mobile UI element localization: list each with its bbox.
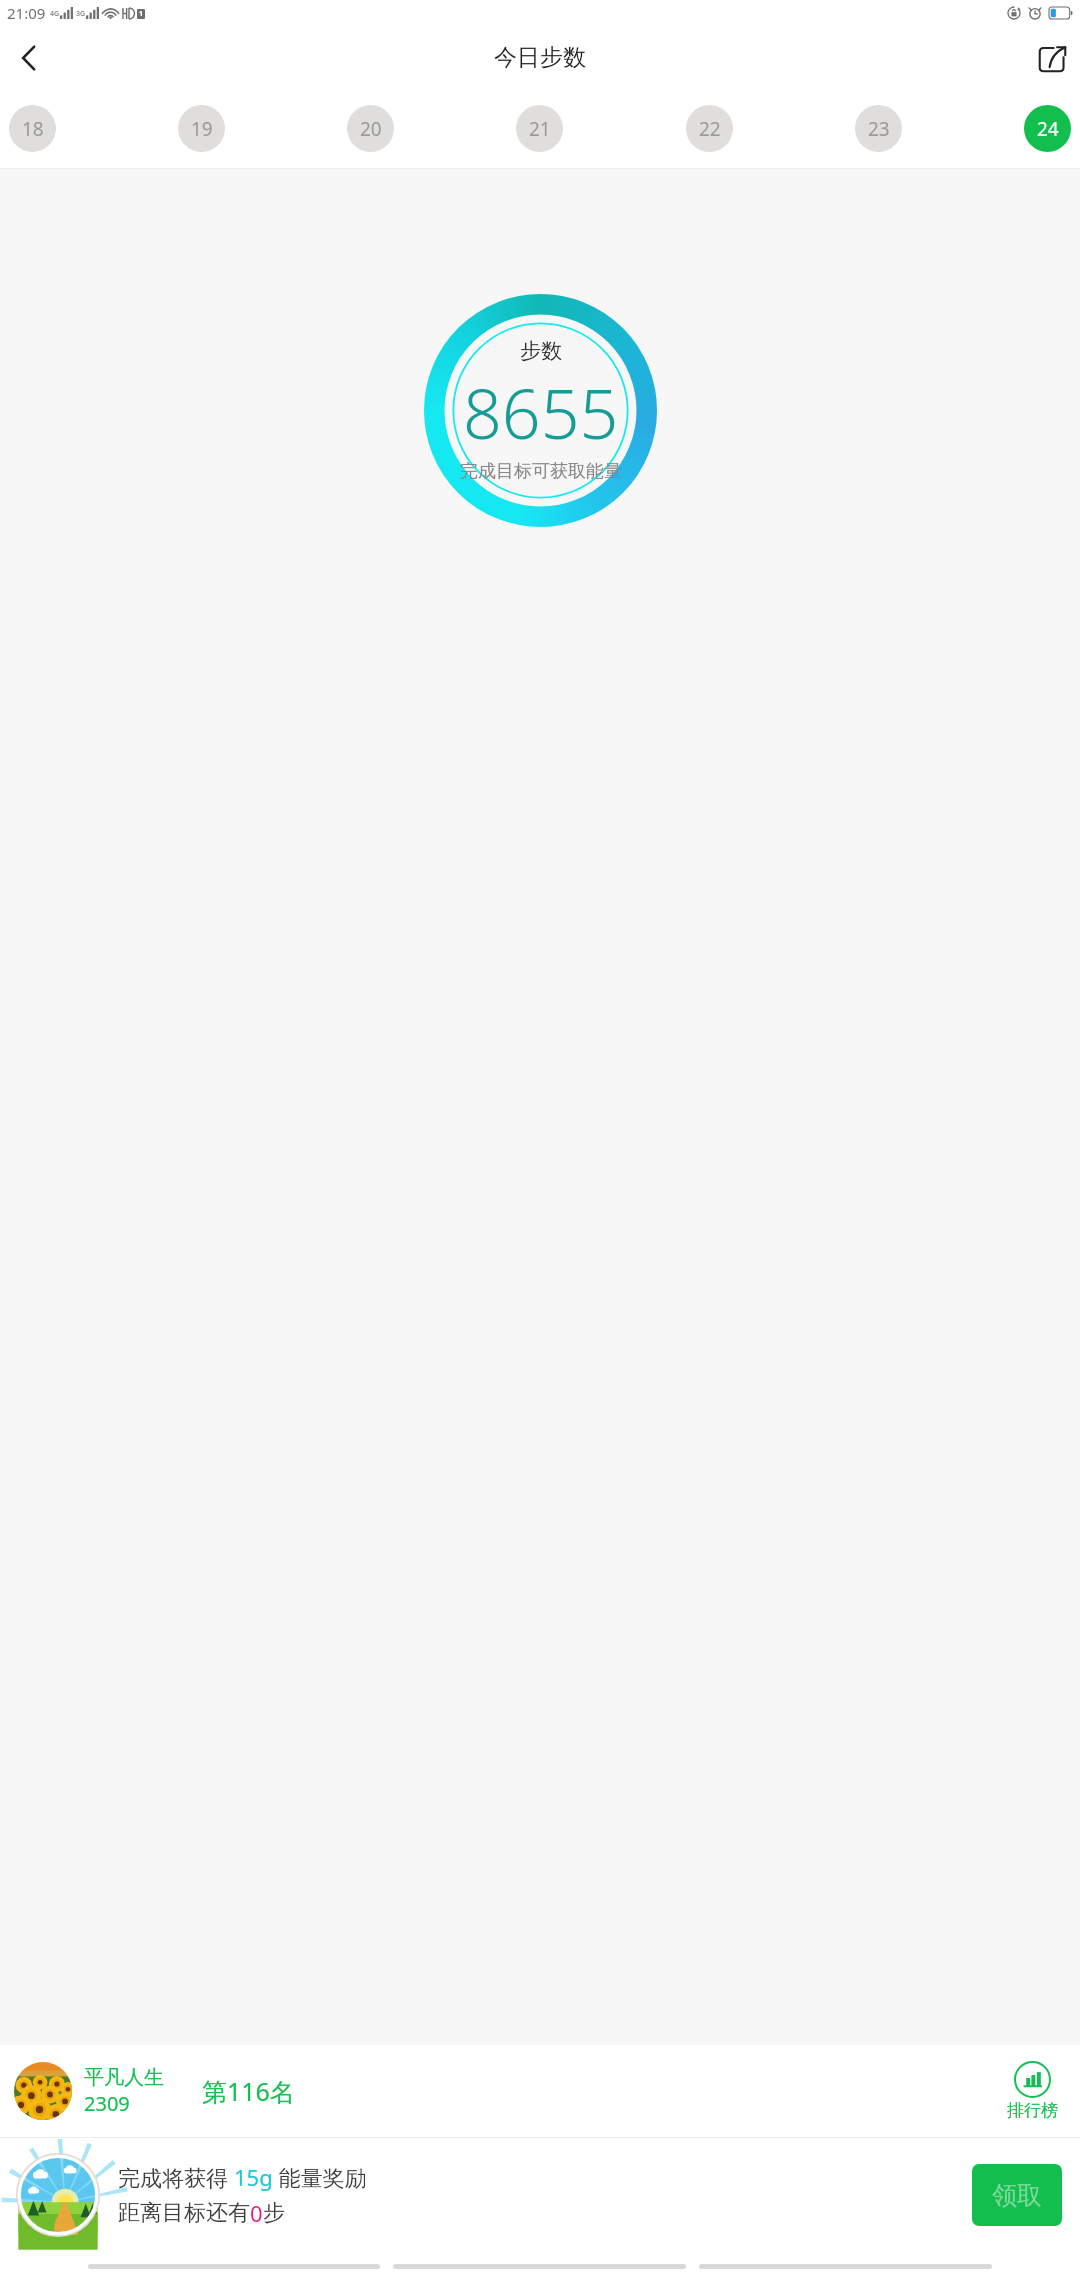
- other: Leaderboard: [1014, 2061, 1051, 2098]
- button[interactable]: Leaderboard: [1003, 2061, 1062, 2121]
- staticText: 19: [191, 116, 213, 142]
- staticText: 1: [139, 9, 144, 19]
- staticText: 第116名: [202, 2074, 295, 2108]
- staticText: 步数: [520, 338, 562, 364]
- staticText: 步: [263, 2199, 285, 2227]
- staticText: 3G: [76, 9, 86, 19]
- staticText: 排行榜: [1007, 2100, 1058, 2121]
- staticText: 18: [22, 116, 44, 142]
- button[interactable]: 领取: [972, 2164, 1062, 2226]
- button[interactable]: 21: [516, 105, 563, 152]
- button[interactable]: 22: [686, 105, 733, 152]
- staticText: 领取: [992, 2180, 1042, 2211]
- staticText: 21: [529, 116, 551, 142]
- staticText: 4G: [50, 9, 60, 19]
- staticText: 完成目标可获取能量: [460, 460, 622, 483]
- button[interactable]: 平凡人生: [0, 2045, 1080, 2137]
- button[interactable]: 23: [855, 105, 902, 152]
- staticText: 21:09: [7, 3, 46, 23]
- button[interactable]: 19: [178, 105, 225, 152]
- staticText: 22: [699, 116, 721, 142]
- staticText: 0: [250, 2198, 263, 2228]
- staticText: 23: [868, 116, 890, 142]
- button[interactable]: Back: [0, 30, 56, 86]
- staticText: 平凡人生: [84, 2065, 164, 2090]
- staticText: 今日步数: [494, 43, 586, 72]
- staticText: 2309: [84, 2090, 130, 2117]
- staticText: 24: [1037, 116, 1059, 142]
- button[interactable]: 24: [1024, 105, 1071, 152]
- staticText: 15g: [234, 2162, 273, 2192]
- button[interactable]: Share: [1024, 30, 1080, 86]
- button[interactable]: 20: [347, 105, 394, 152]
- staticText: 能量奖励: [273, 2162, 367, 2192]
- staticText: 8655: [463, 366, 619, 459]
- button[interactable]: 18: [9, 105, 56, 152]
- staticText: 完成将获得: [118, 2162, 234, 2192]
- staticText: 距离目标还有: [118, 2199, 250, 2227]
- staticText: 20: [360, 116, 382, 142]
